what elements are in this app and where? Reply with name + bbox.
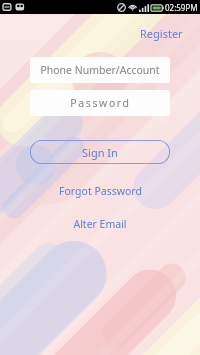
button[interactable]: Alter Email [30,214,170,234]
staticText: Password [70,96,131,110]
staticText: Forgot Password [59,184,142,198]
staticText: Register [140,26,183,41]
staticText: Alter Email [73,217,127,231]
button[interactable]: Register [137,24,186,43]
staticText: Sign In [82,145,118,160]
staticText: Phone Number/Account [40,63,160,77]
staticText: 02:59PM [165,2,198,13]
button[interactable]: Forgot Password [30,181,170,201]
button[interactable]: Phone Number/Account [30,57,170,83]
button[interactable]: Password [30,90,170,116]
button[interactable]: Sign In [30,140,170,164]
